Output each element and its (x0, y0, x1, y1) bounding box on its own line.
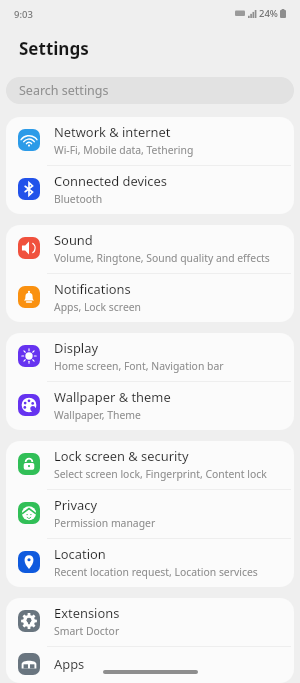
button[interactable]: Apps (6, 647, 294, 683)
staticText: Lock screen & security (54, 447, 189, 465)
staticText: Network & internet (54, 123, 171, 141)
staticText: Home screen, Font, Navigation bar (54, 359, 224, 373)
button[interactable]: Display (6, 333, 294, 381)
staticText: 24% (259, 7, 278, 20)
staticText: Notifications (54, 280, 131, 298)
staticText: Wallpaper & theme (54, 388, 171, 406)
button[interactable]: Sound (6, 225, 294, 273)
button[interactable]: Location (6, 539, 294, 587)
staticText: Bluetooth (54, 192, 103, 206)
button[interactable]: Wallpaper & theme (6, 382, 294, 430)
staticText: Display (54, 339, 98, 357)
staticText: Smart Doctor (54, 624, 120, 638)
staticText: Sound (54, 231, 93, 249)
button[interactable]: Connected devices (6, 166, 294, 214)
staticText: Search settings (19, 82, 109, 99)
staticText: Wallpaper, Theme (54, 408, 141, 422)
staticText: Wi-Fi, Mobile data, Tethering (54, 143, 194, 157)
staticText: Extensions (54, 604, 120, 622)
button[interactable]: Lock screen & security (6, 441, 294, 489)
staticText: Select screen lock, Fingerprint, Content… (54, 467, 267, 481)
staticText: Apps, Lock screen (54, 300, 142, 314)
staticText: Recent location request, Location servic… (54, 565, 258, 579)
staticText: Volume, Ringtone, Sound quality and effe… (54, 251, 270, 265)
staticText: Apps (54, 655, 85, 673)
staticText: Connected devices (54, 172, 167, 190)
button[interactable]: Extensions (6, 598, 294, 646)
staticText: Privacy (54, 496, 97, 514)
button[interactable]: Notifications (6, 274, 294, 322)
staticText: Settings (19, 37, 89, 60)
button[interactable]: Privacy (6, 490, 294, 538)
button[interactable]: Search settings (6, 77, 294, 104)
staticText: 9:03 (14, 8, 33, 21)
staticText: Permission manager (54, 516, 156, 530)
staticText: Location (54, 545, 106, 563)
button[interactable]: Network & internet (6, 117, 294, 165)
